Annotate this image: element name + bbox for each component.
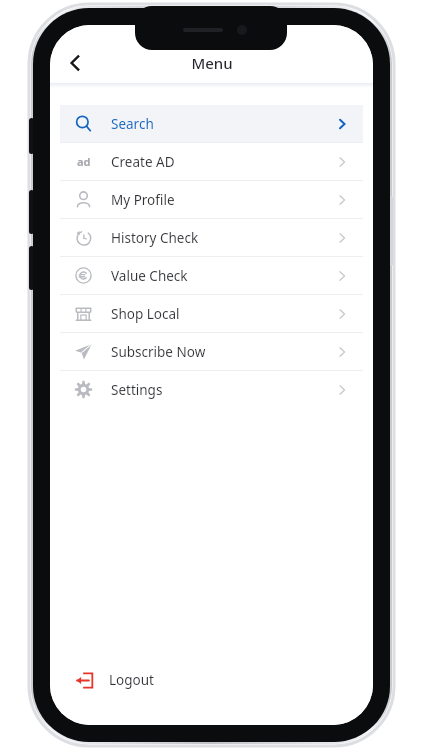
staticText: Search <box>111 115 335 133</box>
staticText: History Check <box>111 229 335 247</box>
staticText: Value Check <box>111 267 335 285</box>
staticText: Settings <box>111 381 335 399</box>
button[interactable]: My Profile <box>60 181 363 218</box>
staticText: Shop Local <box>111 305 335 323</box>
button[interactable]: Subscribe Now <box>60 333 363 370</box>
button[interactable]: Logout <box>50 660 373 700</box>
button[interactable]: Value Check <box>60 257 363 294</box>
staticText: Menu <box>191 53 233 73</box>
staticText: Subscribe Now <box>111 343 335 361</box>
button[interactable]: Back <box>56 44 94 82</box>
button[interactable]: Settings <box>60 371 363 408</box>
button[interactable]: Search <box>60 105 363 142</box>
staticText: Logout <box>109 671 154 689</box>
staticText: Create AD <box>111 153 335 171</box>
button[interactable]: History Check <box>60 219 363 256</box>
button[interactable]: ad <box>60 143 363 180</box>
button[interactable]: Shop Local <box>60 295 363 332</box>
staticText: My Profile <box>111 191 335 209</box>
staticText: ad <box>77 154 91 169</box>
